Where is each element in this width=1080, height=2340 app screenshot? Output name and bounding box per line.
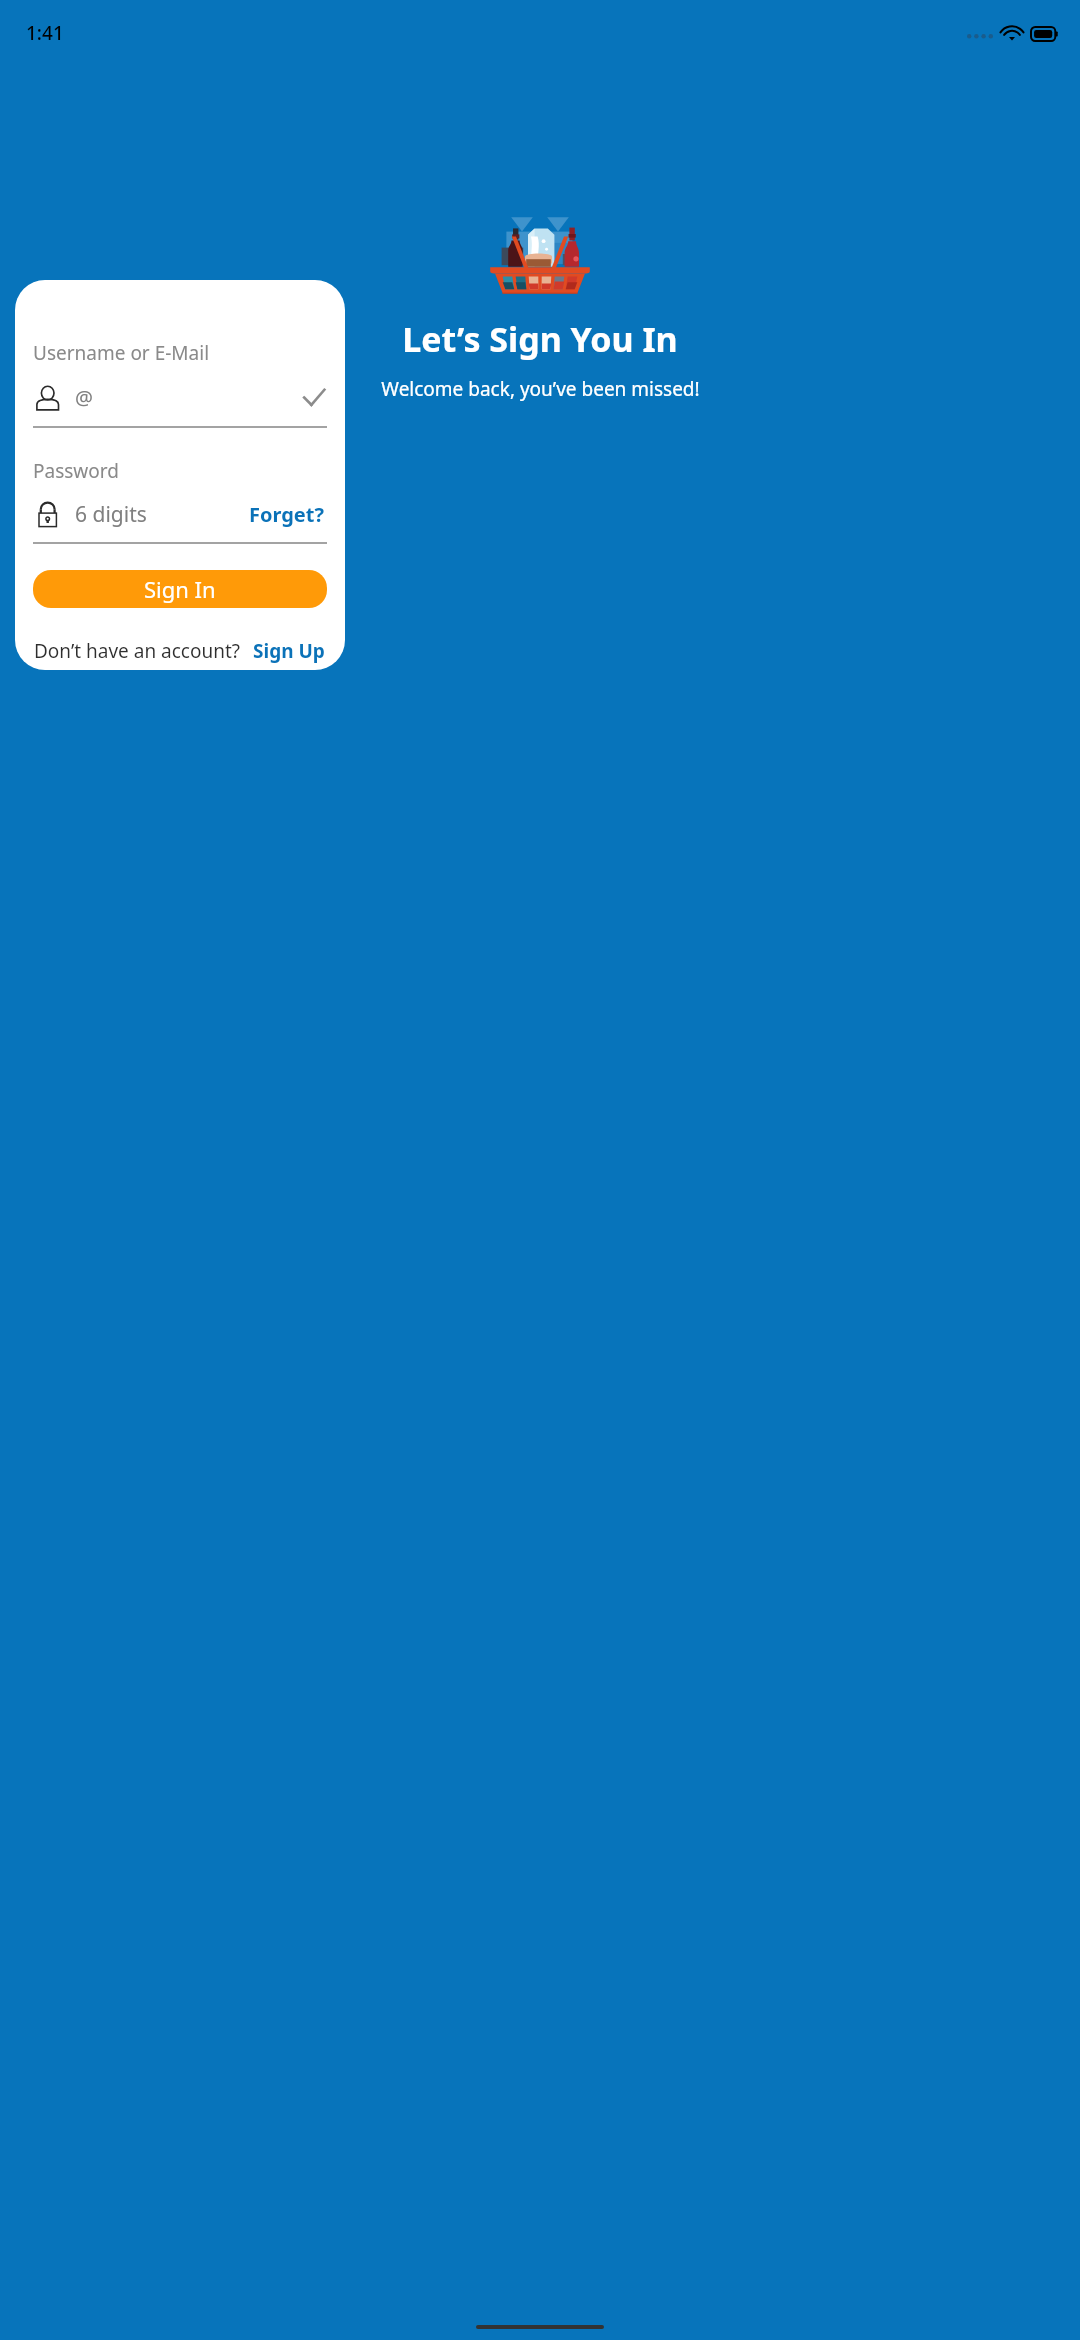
other: Password	[33, 499, 63, 529]
staticText: Username or E-Mail	[33, 340, 210, 366]
staticText: Forget?	[249, 501, 325, 528]
button[interactable]: Sign Up	[251, 634, 327, 668]
staticText: Don’t have an account?	[34, 638, 241, 664]
other: Valid	[301, 384, 327, 410]
staticText: @	[75, 384, 93, 411]
button[interactable]: Password	[33, 499, 147, 529]
staticText: Password	[33, 458, 119, 484]
staticText: Sign Up	[253, 638, 325, 664]
button[interactable]: Sign In	[33, 570, 327, 608]
staticText: Welcome back, you’ve been missed!	[381, 376, 700, 402]
staticText: 1:41	[26, 20, 64, 46]
button[interactable]: Forget?	[247, 497, 327, 532]
staticText: Sign In	[144, 574, 216, 604]
button[interactable]: User	[33, 376, 327, 418]
other: User	[33, 382, 63, 412]
staticText: Let’s Sign You In	[402, 316, 678, 362]
staticText: 6 digits	[75, 500, 147, 529]
other: Shopping basket	[480, 214, 600, 294]
